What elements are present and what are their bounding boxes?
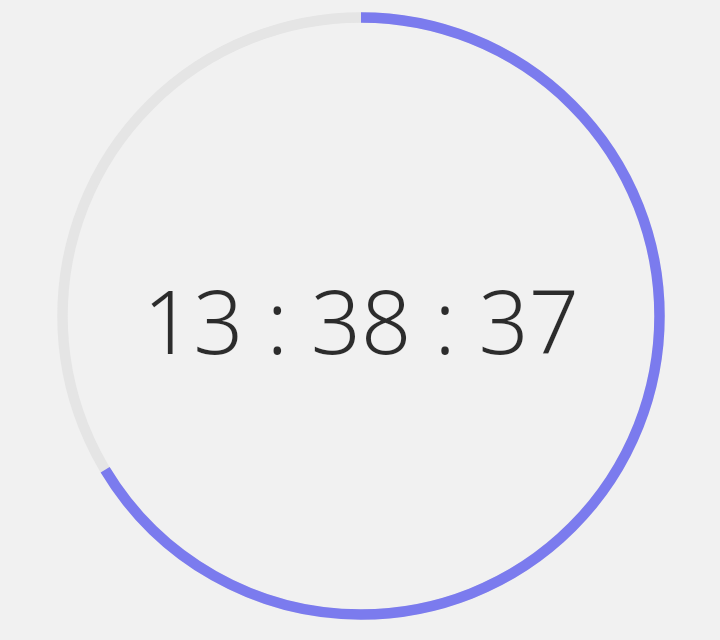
button[interactable]: Countdown timer progress ring [0, 0, 720, 640]
other: Countdown timer progress ring [0, 0, 720, 640]
staticText: 13 : 38 : 37 [143, 260, 579, 380]
